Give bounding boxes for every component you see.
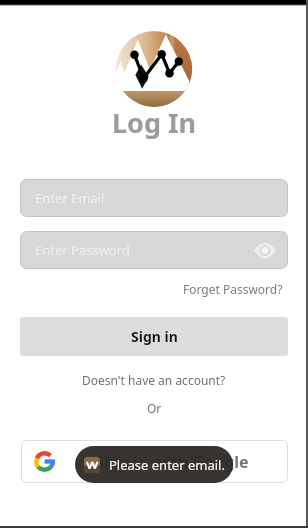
button[interactable]: Enter Password <box>20 231 288 269</box>
button[interactable]: Forget Password? <box>183 281 283 297</box>
staticText: Please enter email. <box>109 456 225 474</box>
button[interactable]: Doesn't have an account? <box>82 372 226 388</box>
staticText: Enter Email <box>35 189 105 207</box>
staticText: Or <box>147 400 162 416</box>
staticText: Enter Password <box>35 241 130 259</box>
button[interactable]: Sign in <box>20 317 288 356</box>
button[interactable]: Enter Email <box>20 179 288 217</box>
staticText: Sign in with Google <box>95 451 249 473</box>
button[interactable]: Sign in with Google <box>21 440 288 483</box>
staticText: Sign in <box>131 327 178 346</box>
staticText: Log In <box>112 104 197 141</box>
